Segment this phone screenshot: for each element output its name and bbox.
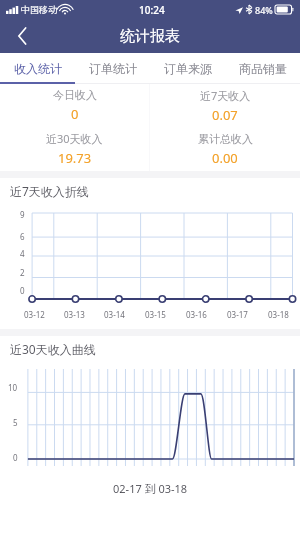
staticText: 0.00 — [212, 149, 238, 167]
staticText: 03-14 — [104, 309, 125, 320]
button[interactable]: 收入统计 — [0, 53, 75, 84]
button[interactable]: Back — [0, 19, 44, 53]
staticText: 84% — [255, 4, 273, 16]
staticText: 今日收入 — [53, 88, 97, 102]
staticText: 10:24 — [139, 3, 165, 17]
staticText: 03-17 — [227, 309, 248, 320]
staticText: 近7天收入折线 — [10, 183, 89, 199]
button[interactable]: 累计总收入 — [150, 127, 300, 171]
staticText: 近7天收入 — [200, 88, 251, 103]
staticText: 统计报表 — [120, 27, 180, 46]
staticText: 0 — [71, 105, 79, 123]
button[interactable]: 订单统计 — [75, 53, 150, 84]
button[interactable]: 近7天收入 — [150, 84, 300, 127]
staticText: 近30天收入 — [46, 131, 103, 146]
staticText: 03-18 — [268, 309, 289, 320]
staticText: 0 — [13, 452, 18, 463]
staticText: 03-15 — [145, 309, 166, 320]
staticText: 9 — [20, 209, 25, 220]
button[interactable]: 今日收入 — [0, 84, 149, 127]
button[interactable]: 商品销量 — [225, 53, 300, 84]
staticText: 03-13 — [64, 309, 85, 320]
staticText: 收入统计 — [14, 61, 62, 76]
staticText: 订单统计 — [89, 61, 137, 76]
staticText: 0 — [20, 285, 25, 296]
staticText: 19.73 — [58, 149, 92, 167]
staticText: 累计总收入 — [198, 132, 253, 146]
staticText: 0.07 — [212, 106, 238, 124]
staticText: 6 — [20, 231, 25, 242]
staticText: 10 — [8, 382, 18, 393]
staticText: 5 — [13, 417, 18, 428]
staticText: 2 — [20, 267, 25, 278]
staticText: 近30天收入曲线 — [10, 341, 96, 357]
staticText: 03-16 — [186, 309, 207, 320]
button[interactable]: 订单来源 — [150, 53, 225, 84]
staticText: 02-17 到 03-18 — [113, 481, 188, 496]
button[interactable]: 近30天收入 — [0, 127, 149, 171]
staticText: 商品销量 — [239, 61, 287, 76]
staticText: 订单来源 — [164, 61, 212, 76]
staticText: 4 — [20, 248, 25, 259]
staticText: 中国移动 — [21, 4, 57, 15]
staticText: 03-12 — [24, 309, 45, 320]
